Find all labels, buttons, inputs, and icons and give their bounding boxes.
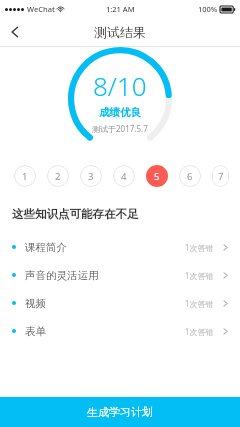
staticText: 7	[218, 170, 224, 183]
staticText: 2	[55, 170, 61, 183]
button[interactable]: 2	[47, 165, 69, 187]
staticText: 成绩优良	[99, 106, 141, 119]
staticText: 1	[22, 170, 28, 183]
button[interactable]: 视频	[0, 289, 240, 317]
button[interactable]: 1	[14, 165, 36, 187]
button[interactable]: 生成学习计划	[0, 397, 240, 427]
staticText: WeChat	[27, 4, 55, 14]
button[interactable]: 7	[212, 165, 229, 187]
staticText: 1:21 AM	[106, 4, 135, 14]
staticText: 这些知识点可能存在不足	[12, 207, 139, 221]
button[interactable]: Back	[0, 17, 30, 46]
staticText: 8/10	[93, 68, 147, 103]
staticText: 声音的灵活运用	[25, 269, 99, 282]
button[interactable]: 5	[146, 165, 168, 187]
staticText: 100%	[198, 4, 218, 14]
staticText: 测试于2017.5.7	[92, 123, 148, 134]
staticText: 视频	[25, 297, 46, 310]
staticText: 1次答错	[185, 326, 214, 337]
button[interactable]: 声音的灵活运用	[0, 261, 240, 289]
staticText: 1次答错	[185, 298, 214, 309]
staticText: 课程简介	[25, 241, 67, 254]
button[interactable]: 课程简介	[0, 233, 240, 261]
staticText: 4	[121, 170, 127, 183]
button[interactable]: 4	[113, 165, 135, 187]
staticText: 生成学习计划	[87, 405, 153, 419]
staticText: 1次答错	[185, 270, 214, 281]
staticText: 表单	[25, 325, 46, 338]
button[interactable]: 3	[80, 165, 102, 187]
staticText: 测试结果	[94, 24, 146, 40]
button[interactable]: 6	[179, 165, 201, 187]
staticText: 3	[88, 170, 94, 183]
staticText: 5	[154, 170, 160, 183]
staticText: 1次答错	[185, 242, 214, 253]
staticText: 6	[187, 170, 193, 183]
button[interactable]: 表单	[0, 317, 240, 345]
